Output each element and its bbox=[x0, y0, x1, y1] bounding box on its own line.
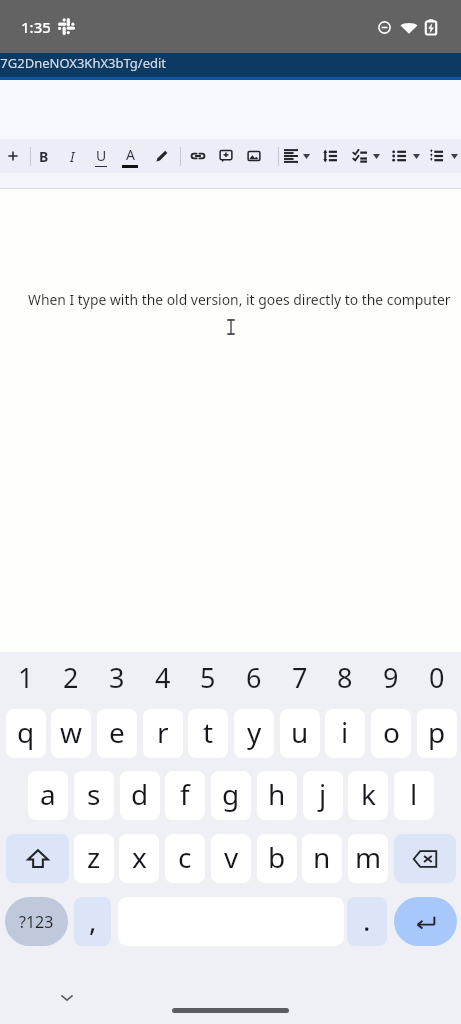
staticText: y bbox=[247, 713, 262, 751]
button[interactable]: q bbox=[6, 709, 46, 758]
staticText: m bbox=[355, 838, 382, 876]
staticText: 2 bbox=[63, 659, 79, 696]
button[interactable]: y bbox=[234, 709, 274, 758]
staticText: p bbox=[428, 713, 446, 751]
button[interactable]: o bbox=[371, 709, 411, 758]
staticText: 6 bbox=[246, 659, 262, 696]
button[interactable]: 5 bbox=[188, 658, 228, 698]
staticText: q bbox=[17, 713, 35, 751]
button[interactable]: Enter bbox=[394, 897, 457, 946]
staticText: g bbox=[222, 775, 240, 813]
button[interactable]: n bbox=[302, 834, 342, 883]
button[interactable]: p bbox=[417, 709, 457, 758]
button[interactable]: u bbox=[280, 709, 320, 758]
staticText: o bbox=[383, 713, 400, 751]
button[interactable]: 2 bbox=[51, 658, 91, 698]
button[interactable]: I bbox=[58, 139, 86, 173]
staticText: e bbox=[109, 713, 125, 751]
button[interactable]: Highlight bbox=[147, 139, 175, 173]
button[interactable]: Add comment bbox=[212, 139, 240, 173]
staticText: u bbox=[291, 713, 309, 751]
staticText: A bbox=[126, 145, 135, 164]
button[interactable]: i bbox=[325, 709, 365, 758]
staticText: 8 bbox=[337, 659, 353, 696]
button[interactable]: k bbox=[348, 771, 388, 820]
button[interactable]: Insert image bbox=[240, 139, 268, 173]
staticText: I bbox=[70, 147, 75, 166]
button[interactable]: 9 bbox=[371, 658, 411, 698]
button[interactable]: e bbox=[97, 709, 137, 758]
staticText: ?123 bbox=[19, 911, 54, 933]
button[interactable]: Hide keyboard bbox=[52, 982, 82, 1012]
button[interactable]: More options bbox=[298, 139, 314, 173]
button[interactable]: j bbox=[303, 771, 343, 820]
button[interactable]: More options bbox=[368, 139, 384, 173]
button[interactable]: 0 bbox=[417, 658, 457, 698]
button[interactable]: z bbox=[74, 834, 114, 883]
staticText: U bbox=[96, 146, 107, 165]
button[interactable]: Backspace bbox=[394, 834, 456, 883]
button[interactable]: More options bbox=[408, 139, 424, 173]
staticText: j bbox=[319, 775, 327, 813]
staticText: 0 bbox=[429, 659, 445, 696]
button[interactable]: b bbox=[257, 834, 297, 883]
staticText: l bbox=[410, 775, 418, 813]
button[interactable]: More options bbox=[446, 139, 461, 173]
button[interactable]: Symbols bbox=[5, 897, 68, 946]
staticText: z bbox=[87, 838, 101, 876]
staticText: When I type with the old version, it goe… bbox=[28, 290, 451, 309]
button[interactable]: . bbox=[347, 897, 387, 946]
staticText: 3 bbox=[109, 659, 125, 696]
staticText: 1 bbox=[18, 659, 34, 696]
button[interactable]: 4 bbox=[143, 658, 183, 698]
staticText: v bbox=[224, 838, 239, 876]
button[interactable]: B bbox=[30, 139, 58, 173]
staticText: d bbox=[131, 775, 149, 813]
staticText: , bbox=[89, 901, 97, 939]
button[interactable]: Insert link bbox=[184, 139, 212, 173]
button[interactable]: 6 bbox=[234, 658, 274, 698]
button[interactable]: v bbox=[211, 834, 251, 883]
button[interactable]: t bbox=[188, 709, 228, 758]
button[interactable]: d bbox=[120, 771, 160, 820]
staticText: h bbox=[268, 775, 286, 813]
staticText: c bbox=[178, 838, 192, 876]
staticText: s bbox=[87, 775, 101, 813]
button[interactable]: g bbox=[211, 771, 251, 820]
button[interactable]: 7 bbox=[280, 658, 320, 698]
button[interactable]: m bbox=[348, 834, 388, 883]
staticText: n bbox=[313, 838, 331, 876]
staticText: 4 bbox=[155, 659, 171, 696]
button[interactable]: x bbox=[119, 834, 159, 883]
staticText: . bbox=[363, 901, 371, 939]
staticText: k bbox=[361, 775, 376, 813]
button[interactable]: 1 bbox=[6, 658, 46, 698]
staticText: l7G2DneNOX3KhX3bTg/edit bbox=[0, 54, 167, 72]
staticText: r bbox=[157, 713, 169, 751]
button[interactable]: Line spacing bbox=[316, 139, 344, 173]
button[interactable]: , bbox=[74, 897, 111, 946]
staticText: a bbox=[40, 775, 56, 813]
button[interactable]: s bbox=[74, 771, 114, 820]
button[interactable]: U bbox=[87, 139, 115, 173]
staticText: 1:35 bbox=[21, 17, 51, 37]
button[interactable]: 3 bbox=[97, 658, 137, 698]
button[interactable]: Align bbox=[277, 139, 305, 173]
staticText: 9 bbox=[383, 659, 399, 696]
button[interactable]: h bbox=[257, 771, 297, 820]
button[interactable]: Shift bbox=[6, 834, 69, 883]
button[interactable]: w bbox=[51, 709, 91, 758]
staticText: b bbox=[268, 838, 286, 876]
button[interactable]: Insert bbox=[0, 139, 27, 173]
button[interactable]: l bbox=[394, 771, 434, 820]
button[interactable]: 8 bbox=[325, 658, 365, 698]
button[interactable]: a bbox=[28, 771, 68, 820]
button[interactable]: r bbox=[143, 709, 183, 758]
button[interactable]: A bbox=[116, 139, 144, 173]
button[interactable]: Numbered list bbox=[422, 139, 450, 173]
button[interactable]: Checklist bbox=[346, 139, 374, 173]
button[interactable]: c bbox=[165, 834, 205, 883]
button[interactable]: f bbox=[165, 771, 205, 820]
button[interactable]: Bulleted list bbox=[385, 139, 413, 173]
